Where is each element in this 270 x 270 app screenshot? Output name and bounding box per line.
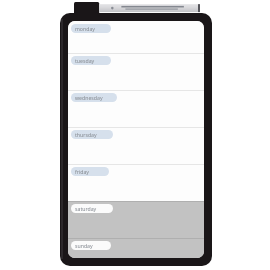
button[interactable]: sunday <box>68 238 204 258</box>
staticText: wednesday <box>75 94 103 101</box>
button[interactable]: monday <box>68 21 204 53</box>
staticText: thursday <box>75 131 97 138</box>
button[interactable]: friday <box>68 164 204 201</box>
staticText: saturday <box>75 205 97 212</box>
button[interactable]: wednesday <box>68 90 204 127</box>
other: Weekly whiteboard planner <box>60 13 212 266</box>
staticText: friday <box>75 168 90 175</box>
staticText: tuesday <box>75 57 95 64</box>
button[interactable]: tuesday <box>68 53 204 90</box>
button[interactable]: Dry erase marker <box>74 1 200 15</box>
button[interactable]: saturday <box>68 201 204 238</box>
staticText: sunday <box>75 242 93 249</box>
button[interactable]: thursday <box>68 127 204 164</box>
staticText: monday <box>75 25 95 32</box>
